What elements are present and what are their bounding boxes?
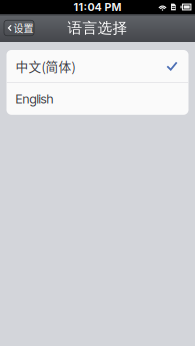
staticText: 中文(简体) xyxy=(15,57,75,75)
staticText: 11:04 PM xyxy=(73,0,121,13)
staticText: 设置 xyxy=(13,21,33,35)
button[interactable]: English xyxy=(6,83,188,115)
staticText: 语言选择 xyxy=(67,19,127,37)
button[interactable]: 中文(简体) xyxy=(6,50,188,82)
staticText: English xyxy=(15,91,53,106)
button[interactable]: 设置 xyxy=(4,20,34,36)
